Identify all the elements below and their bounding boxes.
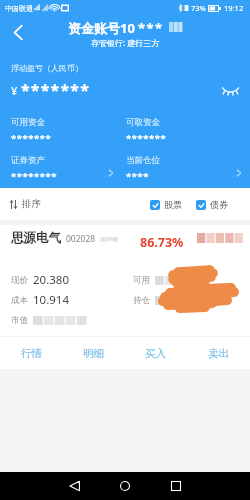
button[interactable]: 当前仓位 — [126, 155, 242, 193]
button[interactable]: 可用资金 — [11, 117, 114, 155]
button[interactable]: 股票 — [148, 195, 184, 214]
staticText: **** — [126, 170, 149, 183]
staticText: ******* — [11, 132, 52, 145]
staticText: 可用资金 — [11, 117, 45, 128]
button[interactable]: 排序 — [10, 194, 41, 214]
staticText: ******* — [126, 132, 167, 145]
staticText: 行情 — [21, 347, 42, 360]
button[interactable]: Show balance — [218, 78, 242, 102]
button[interactable]: Home — [111, 472, 139, 500]
staticText: 明细 — [83, 347, 104, 360]
staticText: 排序 — [22, 198, 41, 210]
button[interactable]: 证券资产 — [11, 155, 114, 193]
staticText: 中国联通 — [5, 4, 33, 13]
button[interactable]: 债券 — [194, 195, 230, 214]
staticText: 卖出 — [208, 347, 229, 360]
staticText: *** — [138, 19, 164, 37]
staticText: 002028 — [66, 233, 96, 245]
staticText: 可用 — [133, 275, 150, 286]
staticText: 19:12 — [224, 3, 244, 13]
staticText: ******* — [21, 79, 91, 101]
staticText: 买入 — [145, 347, 166, 360]
staticText: 债券 — [210, 199, 228, 210]
staticText: 当前仓位 — [126, 155, 160, 166]
staticText: 10.914 — [33, 292, 69, 308]
staticText: ******** — [11, 170, 57, 183]
button[interactable]: 明细 — [62, 337, 124, 369]
staticText: 成本 — [11, 295, 28, 306]
staticText: 深圳A股 — [100, 236, 119, 243]
button[interactable]: 卖出 — [187, 337, 250, 369]
staticText: 股票 — [164, 199, 182, 210]
staticText: 市值 — [11, 315, 28, 326]
staticText: 现价 — [11, 275, 28, 286]
button[interactable]: 可取资金 — [126, 117, 242, 155]
button[interactable]: Recents — [162, 472, 190, 500]
staticText: 20.380 — [33, 272, 69, 288]
staticText: 73% — [191, 3, 206, 13]
staticText: 可取资金 — [126, 117, 160, 128]
staticText: 资金账号10 — [68, 19, 135, 37]
staticText: 思源电气 — [11, 230, 61, 246]
staticText: ¥ — [11, 83, 18, 98]
staticText: 浮动盈亏（人民币） — [11, 63, 83, 73]
staticText: 证券资产 — [11, 155, 45, 166]
staticText: 持仓 — [133, 295, 150, 306]
button[interactable]: Back — [60, 472, 88, 500]
button[interactable]: 行情 — [0, 337, 62, 369]
button[interactable]: Back — [5, 19, 31, 45]
staticText: 86.73% — [140, 234, 184, 251]
button[interactable]: 买入 — [124, 337, 187, 369]
staticText: 存管银行: 建行三方 — [91, 37, 160, 48]
